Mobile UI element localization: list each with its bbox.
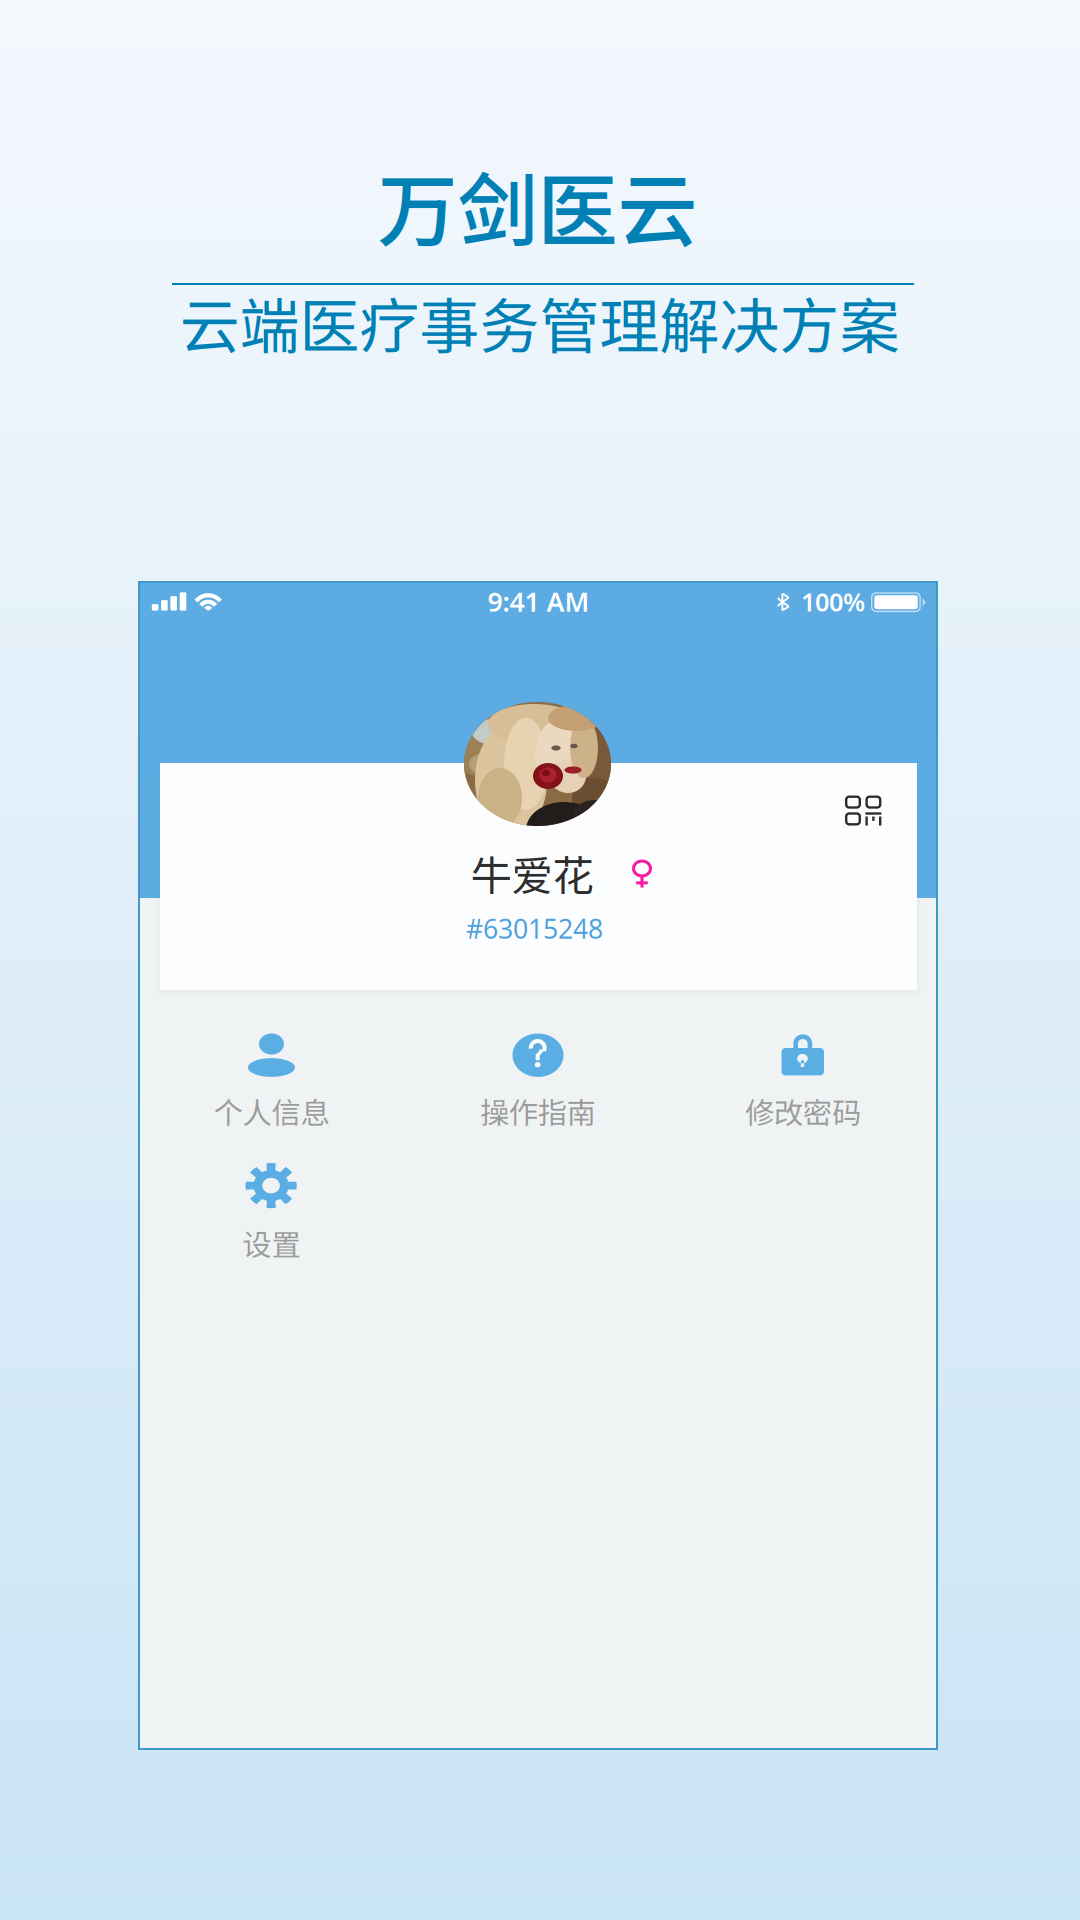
staticText: 个人信息 [213, 1090, 329, 1132]
button[interactable]: Scan QR code [824, 774, 902, 846]
staticText: 牛爱花 [470, 843, 593, 903]
staticText: 设置 [242, 1222, 300, 1264]
button[interactable]: 修改密码 [670, 1021, 936, 1143]
staticText: 操作指南 [480, 1090, 596, 1132]
staticText: 万剑医云 [377, 147, 697, 263]
staticText: 9:41 AM [487, 584, 589, 619]
staticText: 修改密码 [745, 1090, 861, 1132]
button[interactable]: 操作指南 [405, 1021, 671, 1143]
staticText: #63015248 [466, 911, 603, 946]
staticText: 云端医疗事务管理解决方案 [179, 279, 899, 365]
button[interactable]: 个人信息 [138, 1021, 404, 1143]
staticText: 100% [801, 585, 865, 618]
button[interactable]: 设置 [138, 1152, 404, 1274]
